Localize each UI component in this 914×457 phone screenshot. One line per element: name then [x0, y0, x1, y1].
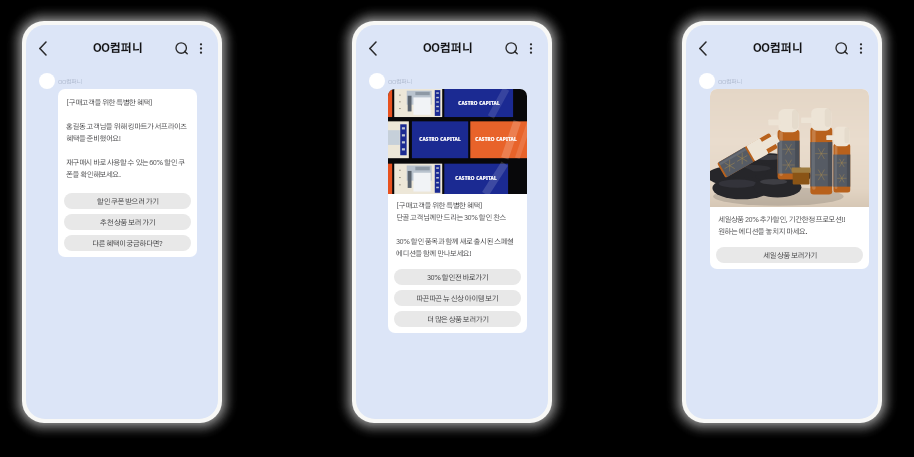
staticText: OO컴퍼니	[93, 43, 143, 54]
staticText: 에디션을 함께 만나보세요!	[396, 250, 471, 257]
button[interactable]: Search	[501, 38, 522, 59]
staticText: 30% 할인전 바로가기	[427, 274, 489, 281]
button[interactable]: 추천 상품 보러 가기	[64, 214, 191, 230]
staticText: 홍길동 고객님을 위해 킹마트가 서프라이즈	[66, 123, 187, 130]
button[interactable]: More options	[521, 39, 540, 58]
staticText: CASTRO CAPITAL	[445, 100, 513, 106]
staticText: OO컴퍼니	[753, 43, 803, 54]
button[interactable]: More options	[851, 39, 870, 58]
staticText: OO컴퍼니	[423, 43, 473, 54]
staticText: 세일 상품 보러가기	[763, 252, 817, 259]
button[interactable]: Search	[831, 38, 852, 59]
staticText: [구매고객을 위한 특별한 혜택]	[396, 202, 483, 209]
button[interactable]: 더 많은 상품 보러가기	[394, 311, 521, 327]
staticText: OO컴퍼니	[58, 77, 82, 86]
button[interactable]: Back	[361, 37, 384, 60]
staticText: OO컴퍼니	[388, 77, 412, 86]
staticText: 혜택을 준비했어요!	[66, 135, 121, 142]
staticText: CASTRO CAPITAL	[406, 136, 474, 142]
button[interactable]: Search	[171, 38, 192, 59]
staticText: 다른 혜택이 궁금하다면?	[92, 240, 163, 247]
staticText: 추천 상품 보러 가기	[100, 219, 156, 226]
staticText: 세일상품 20% 추가할인, 기간한정 프로모션!!	[718, 216, 845, 223]
button[interactable]: Back	[31, 37, 54, 60]
staticText: 할인 쿠폰 받으러 가기	[97, 198, 159, 205]
button[interactable]: 다른 혜택이 궁금하다면?	[64, 235, 191, 251]
staticText: 따끈따끈 뉴 신상 아이템 보기	[416, 295, 499, 302]
staticText: 더 많은 상품 보러가기	[427, 316, 489, 323]
staticText: 30% 할인 품목과 함께 새로 출시된 스페셜	[396, 238, 514, 245]
staticText: CASTRO CAPITAL	[442, 175, 510, 181]
button[interactable]: More options	[191, 39, 210, 58]
staticText: 재구매시 바로 사용할 수 있는 60% 할인 쿠	[66, 159, 185, 166]
button[interactable]: 30% 할인전 바로가기	[394, 269, 521, 285]
staticText: 단골 고객님께만 드리는 30% 할인 찬스	[396, 214, 506, 221]
button[interactable]: 할인 쿠폰 받으러 가기	[64, 193, 191, 209]
button[interactable]: 따끈따끈 뉴 신상 아이템 보기	[394, 290, 521, 306]
button[interactable]: 세일 상품 보러가기	[716, 247, 863, 263]
staticText: 폰을 확인해보세요.	[66, 171, 121, 178]
button[interactable]: Back	[691, 37, 714, 60]
staticText: CASTRO CAPITAL	[465, 136, 527, 142]
staticText: [구매고객을 위한 특별한 혜택]	[66, 99, 153, 106]
staticText: 원하는 에디션을 놓치지 마세요.	[718, 228, 808, 235]
staticText: OO컴퍼니	[718, 77, 742, 86]
